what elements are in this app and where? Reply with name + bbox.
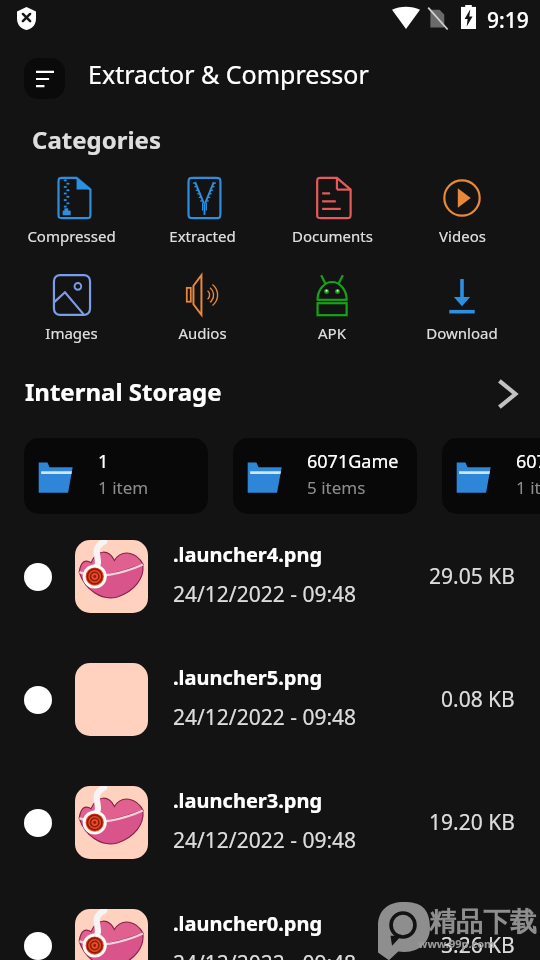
staticText: Documents	[292, 226, 373, 246]
button[interactable]: Audios	[137, 274, 267, 343]
staticText: www.99p.com	[418, 936, 495, 951]
staticText: 24/12/2022 - 09:48	[173, 826, 357, 855]
staticText: .launcher4.png	[173, 541, 323, 568]
staticText: 1 item	[516, 476, 540, 499]
staticText: 19.20 KB	[429, 808, 515, 837]
staticText: Compressed	[27, 226, 116, 246]
button[interactable]: Images	[6, 274, 137, 343]
staticText: 1	[98, 449, 109, 474]
staticText: .launcher0.png	[173, 910, 323, 937]
staticText: 3.26 KB	[441, 931, 515, 960]
staticText: .launcher3.png	[173, 787, 323, 814]
button[interactable]: Download	[397, 274, 527, 343]
button[interactable]: Select .launcher3.png	[24, 809, 52, 837]
staticText: 24/12/2022 - 09:48	[173, 580, 357, 609]
staticText: .launcher5.png	[173, 664, 323, 691]
staticText: 5 items	[307, 476, 366, 499]
button[interactable]: Documents	[267, 177, 397, 246]
button[interactable]: Extracted	[137, 177, 267, 246]
button[interactable]: 6071Game	[233, 438, 417, 514]
button[interactable]: Select .launcher4.png	[0, 515, 540, 638]
staticText: 24/12/2022 - 09:48	[173, 949, 357, 960]
staticText: Audios	[178, 323, 227, 343]
button[interactable]: Open internal storage	[485, 372, 529, 416]
button[interactable]: Select .launcher5.png	[0, 638, 540, 761]
staticText: APK	[318, 323, 346, 343]
staticText: Categories	[32, 123, 161, 156]
button[interactable]: Select .launcher4.png	[24, 563, 52, 591]
button[interactable]: 1	[24, 438, 208, 514]
button[interactable]: Videos	[397, 177, 527, 246]
staticText: Download	[426, 323, 498, 343]
staticText: 29.05 KB	[429, 562, 515, 591]
staticText: Images	[45, 323, 98, 343]
staticText: 1 item	[98, 476, 149, 499]
staticText: 6071Game	[307, 449, 399, 474]
button[interactable]: Select .launcher0.png	[24, 932, 52, 960]
button[interactable]: APK	[267, 274, 397, 343]
button[interactable]: Menu	[24, 58, 65, 99]
staticText: Internal Storage	[25, 375, 222, 408]
staticText: Extractor & Compressor	[88, 57, 369, 91]
staticText: 24/12/2022 - 09:48	[173, 703, 357, 732]
button[interactable]: Select .launcher5.png	[24, 686, 52, 714]
button[interactable]: Compressed	[6, 177, 137, 246]
staticText: Extracted	[169, 226, 236, 246]
button[interactable]: Select .launcher3.png	[0, 761, 540, 884]
staticText: 9:19	[487, 6, 529, 35]
staticText: Videos	[439, 226, 486, 246]
button[interactable]: 6071Mo	[442, 438, 540, 514]
staticText: 6071Mo	[516, 449, 540, 474]
button[interactable]: Select .launcher0.png	[0, 884, 540, 960]
staticText: 0.08 KB	[441, 685, 515, 714]
staticText: 精品下载	[429, 905, 537, 939]
